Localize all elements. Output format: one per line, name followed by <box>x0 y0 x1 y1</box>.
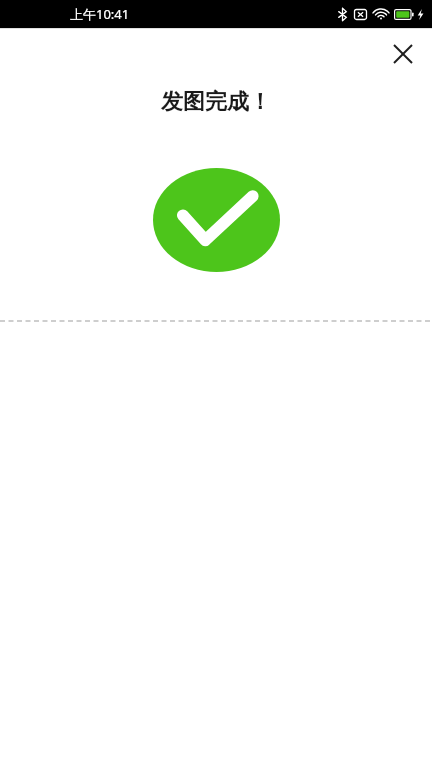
staticText: 发图完成！ <box>0 88 432 116</box>
staticText: 上午10:41 <box>70 5 130 23</box>
button[interactable]: Close <box>379 30 426 77</box>
